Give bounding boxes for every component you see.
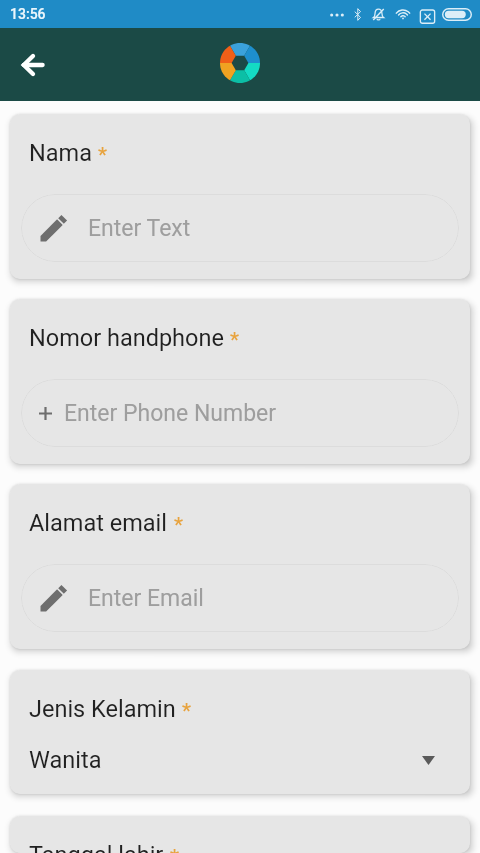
button[interactable]: Enter Phone Number	[21, 379, 459, 447]
staticText: Enter Email	[88, 585, 204, 612]
staticText: *	[182, 699, 192, 724]
button[interactable]: Wanita	[29, 742, 459, 778]
staticText: Enter Text	[88, 215, 191, 242]
button[interactable]: Back	[11, 43, 55, 87]
staticText: Tanggal lahir	[29, 841, 164, 853]
staticText: Nama	[29, 139, 92, 167]
staticText: Wanita	[29, 746, 102, 774]
staticText: *	[170, 845, 180, 853]
button[interactable]: Enter Email	[21, 564, 459, 632]
staticText: *	[174, 513, 184, 538]
button[interactable]: Enter Text	[21, 194, 459, 262]
staticText: Jenis Kelamin	[29, 695, 176, 723]
staticText: 13:56	[10, 6, 46, 22]
staticText: Enter Phone Number	[64, 400, 277, 427]
staticText: *	[230, 328, 240, 353]
staticText: *	[98, 143, 108, 168]
staticText: Alamat email	[29, 509, 168, 537]
staticText: Nomor handphone	[29, 324, 224, 352]
